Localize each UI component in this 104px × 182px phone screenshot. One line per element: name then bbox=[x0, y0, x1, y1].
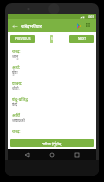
staticText: घुँडा bbox=[12, 70, 18, 75]
button[interactable]: शब्द: bbox=[9, 46, 95, 62]
button[interactable]: Page indicator bbox=[50, 35, 53, 43]
button[interactable]: Play Store bbox=[74, 21, 83, 30]
staticText: चोटो. bbox=[12, 86, 20, 91]
button[interactable]: अर्थि bbox=[9, 110, 95, 126]
button[interactable]: Recents bbox=[71, 149, 83, 160]
button[interactable]: बंदु-प्रतिद्व bbox=[9, 94, 95, 110]
staticText: PREVIOUS bbox=[15, 37, 31, 41]
staticText: जवाफ़ठो bbox=[12, 118, 25, 123]
staticText: नतीजा हेर्नुहोस् bbox=[42, 141, 62, 146]
button[interactable]: Home bbox=[46, 149, 58, 160]
button[interactable]: PREVIOUS bbox=[10, 35, 35, 43]
button[interactable]: NEXT bbox=[69, 35, 94, 43]
button[interactable]: वाक्य: bbox=[9, 78, 95, 94]
button[interactable]: Back bbox=[21, 149, 33, 160]
staticText: 5 bbox=[51, 37, 53, 41]
button[interactable]: नतीजा हेर्नुहोस् bbox=[10, 139, 94, 147]
button[interactable]: Back bbox=[11, 22, 19, 30]
staticText: बंदु-प्रतिद्व bbox=[12, 96, 28, 102]
button[interactable]: Apps bbox=[84, 21, 93, 30]
staticText: अर्थि bbox=[12, 112, 20, 118]
staticText: शब्द: bbox=[12, 128, 21, 134]
staticText: कंद bbox=[12, 102, 18, 107]
staticText: शब्द: bbox=[12, 48, 21, 54]
staticText: अर्थ: bbox=[12, 64, 20, 70]
staticText: जानु bbox=[12, 54, 19, 59]
staticText: वाक्य: bbox=[12, 80, 23, 86]
button[interactable]: शब्द: bbox=[9, 126, 95, 137]
staticText: शब्दभण्डार bbox=[21, 22, 42, 29]
button[interactable]: अर्थ: bbox=[9, 62, 95, 78]
staticText: 4:03 bbox=[88, 15, 94, 19]
staticText: NEXT bbox=[78, 37, 86, 41]
